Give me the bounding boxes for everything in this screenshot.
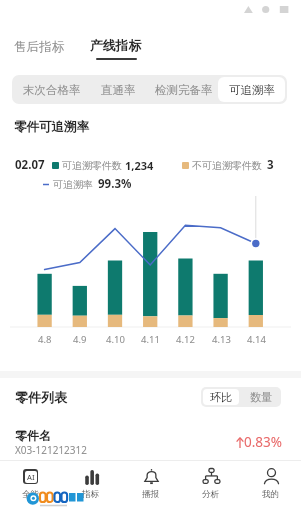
staticText: 零件列表 [15, 389, 67, 405]
button[interactable]: 播报 [121, 461, 181, 516]
button[interactable]: 我的 [241, 461, 301, 516]
staticText: 可追溯零件数 [62, 159, 122, 172]
button[interactable]: 指标 [61, 461, 121, 516]
staticText: 环比 [210, 390, 232, 404]
button[interactable]: 数量 [243, 389, 279, 405]
staticText: 4.13 [212, 333, 231, 346]
staticText: 4.10 [106, 333, 125, 346]
staticText: 4.11 [141, 333, 160, 346]
staticText: 指标 [82, 489, 100, 500]
staticText: 零件可追溯率 [14, 119, 89, 135]
staticText: 播报 [142, 489, 160, 500]
staticText: 1,234 [125, 158, 154, 173]
button[interactable]: 可追溯率 [218, 77, 285, 102]
button[interactable]: 产线指标 [84, 33, 148, 65]
staticText: 99.3% [98, 176, 132, 192]
staticText: 全能 [22, 489, 40, 500]
staticText: 可追溯率 [53, 178, 93, 191]
staticText: 0.83% [244, 433, 283, 451]
staticText: 不可追溯零件数 [192, 159, 262, 172]
button[interactable]: 直通率 [93, 77, 143, 102]
button[interactable]: 分析 [181, 461, 241, 516]
staticText: 可追溯率 [229, 83, 275, 97]
button[interactable]: 零件名 [0, 424, 301, 460]
button[interactable]: 末次合格率 [14, 77, 89, 102]
staticText: 我的 [262, 489, 280, 500]
staticText: 3 [267, 157, 274, 173]
button[interactable]: 检测完备率 [154, 77, 214, 102]
staticText: 02.07 [15, 157, 45, 173]
staticText: 直通率 [101, 83, 136, 97]
staticText: X03-121212312 [15, 443, 88, 457]
staticText: 4.8 [38, 333, 52, 346]
staticText: AI [27, 472, 35, 482]
staticText: 零件名 [15, 428, 51, 443]
staticText: 末次合格率 [23, 83, 81, 97]
staticText: 售后指标 [14, 39, 65, 55]
staticText: 4.9 [73, 333, 87, 346]
staticText: 4.12 [176, 333, 195, 346]
staticText: 4.14 [247, 333, 266, 346]
staticText: 数量 [250, 390, 272, 404]
button[interactable]: 全能 [0, 461, 61, 516]
staticText: 分析 [202, 489, 220, 500]
staticText: 产线指标 [90, 38, 142, 54]
button[interactable]: 环比 [203, 389, 239, 405]
button[interactable]: 售后指标 [8, 34, 71, 60]
staticText: 检测完备率 [155, 83, 213, 97]
